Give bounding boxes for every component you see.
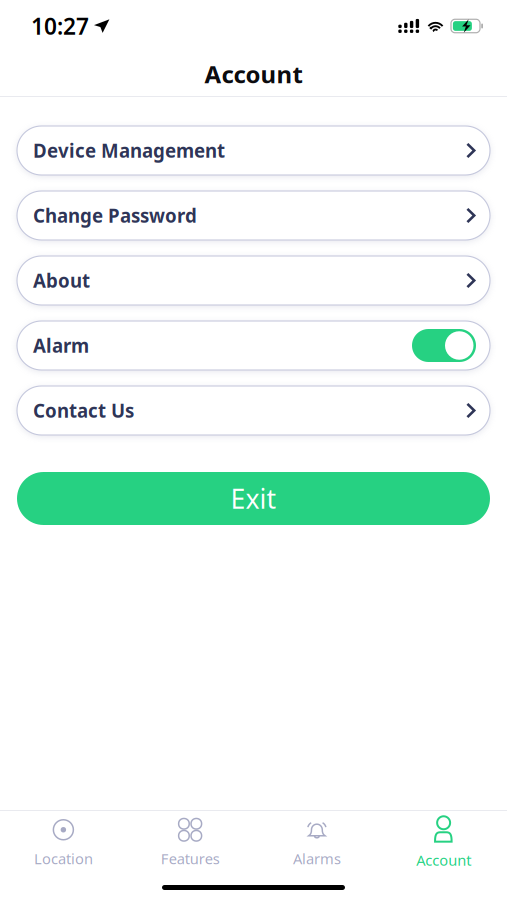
staticText: Contact Us	[33, 398, 134, 423]
staticText: About	[33, 268, 90, 293]
button[interactable]: Location	[0, 811, 127, 875]
staticText: Alarms	[293, 849, 341, 868]
staticText: Device Management	[33, 138, 225, 163]
staticText: Change Password	[33, 203, 197, 228]
button[interactable]: Alarm	[17, 321, 490, 370]
button[interactable]: Exit	[17, 472, 490, 525]
staticText: Account	[416, 850, 471, 870]
staticText: Account	[204, 58, 302, 90]
button[interactable]: Change Password	[17, 191, 490, 240]
staticText: 10:27	[31, 11, 89, 41]
button[interactable]: Features	[127, 811, 254, 875]
staticText: Features	[161, 849, 220, 868]
button[interactable]: Contact Us	[17, 386, 490, 435]
button[interactable]: Account	[380, 811, 507, 875]
button[interactable]: Device Management	[17, 126, 490, 175]
staticText: Alarm	[33, 333, 89, 358]
staticText: Location	[34, 849, 93, 868]
button[interactable]: About	[17, 256, 490, 305]
button[interactable]: Alarms	[253, 811, 380, 875]
staticText: Exit	[230, 481, 276, 516]
